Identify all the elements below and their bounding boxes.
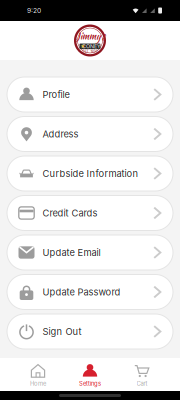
staticText: CONEY: [82, 43, 101, 50]
staticText: ★: [80, 43, 86, 50]
staticText: Cart: [136, 380, 147, 387]
staticText: Address: [42, 128, 78, 140]
staticText: Update Password: [42, 286, 120, 298]
button[interactable]: Profile: [7, 77, 173, 112]
button[interactable]: Home: [12, 357, 64, 391]
button[interactable]: Curbside Information: [7, 156, 173, 191]
button[interactable]: Cart: [116, 357, 168, 391]
button[interactable]: Sign Out: [7, 314, 173, 349]
button[interactable]: Credit Cards: [7, 195, 173, 230]
button[interactable]: Update Password: [7, 274, 173, 309]
button[interactable]: Address: [7, 116, 173, 151]
button[interactable]: Settings: [64, 357, 116, 391]
staticText: Sign Out: [42, 326, 81, 337]
button[interactable]: Update Email: [7, 235, 173, 270]
staticText: Home: [30, 380, 46, 387]
staticText: Jimmy's: [75, 30, 105, 43]
staticText: Curbside Information: [42, 168, 138, 179]
staticText: EST. 1950: [82, 50, 97, 53]
staticText: Profile: [42, 89, 69, 100]
staticText: 9:20: [27, 6, 41, 15]
staticText: Settings: [79, 380, 101, 387]
staticText: Update Email: [42, 247, 100, 258]
staticText: Credit Cards: [42, 207, 97, 219]
